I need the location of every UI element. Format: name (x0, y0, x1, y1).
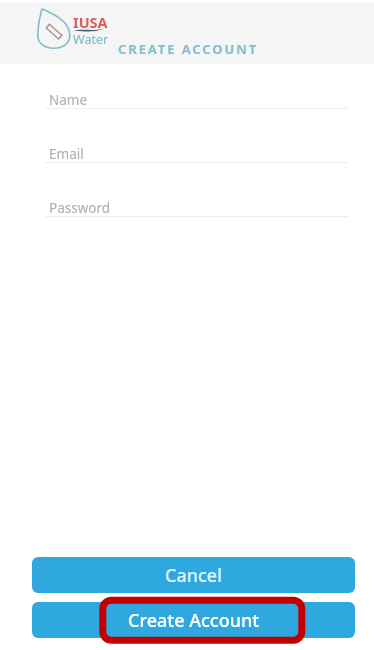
button[interactable]: Name (45, 82, 348, 109)
staticText: IUSA (73, 12, 108, 32)
staticText: CREATE ACCOUNT (118, 40, 259, 58)
button[interactable]: Password (45, 190, 348, 217)
button[interactable]: Create Account (32, 602, 355, 638)
staticText: Water (73, 31, 109, 48)
staticText: Cancel (165, 563, 223, 588)
staticText: Name (49, 91, 88, 109)
staticText: Email (49, 145, 84, 163)
button[interactable]: Email (45, 136, 348, 163)
other: IUSA Water logo (37, 7, 112, 52)
staticText: Password (49, 199, 111, 217)
staticText: Create Account (128, 608, 260, 633)
button[interactable]: Cancel (32, 557, 355, 593)
